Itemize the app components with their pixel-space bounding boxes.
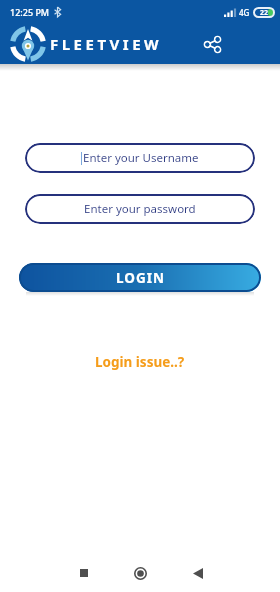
staticText: 12:25 PM — [10, 6, 50, 18]
button[interactable]: LOGIN — [19, 263, 261, 292]
button[interactable]: Login issue..? — [87, 349, 193, 375]
staticText: LOGIN — [116, 269, 165, 287]
button[interactable]: Enter your Username — [25, 143, 255, 173]
button[interactable]: Enter your password — [25, 194, 255, 224]
staticText: FLEETVIEW — [50, 34, 163, 54]
staticText: 22 — [260, 8, 269, 18]
staticText: Login issue..? — [95, 353, 185, 371]
staticText: Enter your password — [84, 201, 196, 217]
staticText: Enter your Username — [83, 150, 199, 166]
button[interactable] — [169, 554, 226, 592]
staticText: 4G — [239, 7, 250, 18]
button[interactable] — [55, 554, 112, 592]
button[interactable] — [112, 554, 169, 592]
button[interactable] — [198, 30, 226, 58]
